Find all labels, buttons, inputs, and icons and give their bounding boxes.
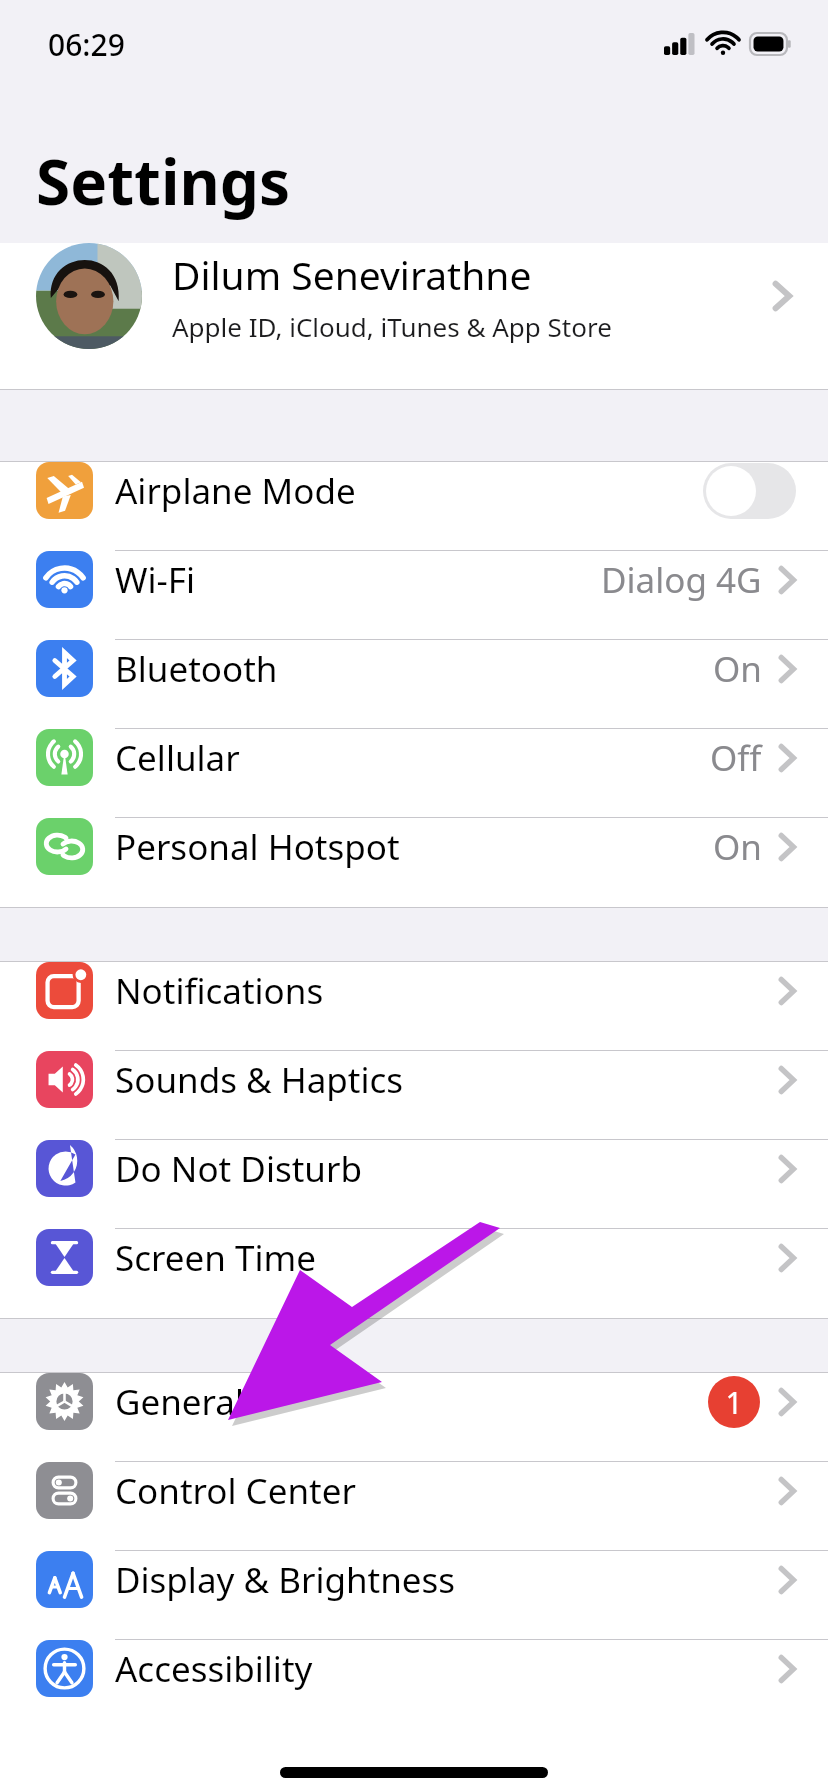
staticText: Off — [710, 734, 762, 782]
staticText: Apple ID, iCloud, iTunes & App Store — [172, 309, 612, 344]
button[interactable]: Cellular — [0, 729, 828, 818]
staticText: 06:29 — [48, 24, 125, 65]
button[interactable]: Screen Time — [0, 1229, 828, 1318]
staticText: Dilum Senevirathne — [172, 248, 532, 301]
staticText: Airplane Mode — [115, 467, 703, 515]
staticText: Cellular — [115, 734, 710, 782]
staticText: 1 — [725, 1382, 743, 1423]
staticText: Control Center — [115, 1467, 778, 1515]
staticText: On — [713, 823, 762, 871]
button[interactable]: Dilum Senevirathne — [0, 243, 828, 389]
button[interactable]: Display & Brightness — [0, 1551, 828, 1640]
staticText: On — [713, 645, 762, 693]
staticText: Accessibility — [115, 1645, 778, 1693]
button[interactable]: Notifications — [0, 962, 828, 1051]
button[interactable]: Control Center — [0, 1462, 828, 1551]
staticText: Do Not Disturb — [115, 1145, 778, 1193]
button[interactable]: Wi-Fi — [0, 551, 828, 640]
staticText: General — [115, 1378, 708, 1426]
button[interactable]: Accessibility — [0, 1640, 828, 1729]
staticText: Notifications — [115, 967, 778, 1015]
button[interactable]: Airplane Mode — [0, 462, 828, 551]
button[interactable]: General — [0, 1373, 828, 1462]
staticText: Settings — [36, 139, 291, 223]
staticText: Dialog 4G — [601, 556, 762, 604]
staticText: Bluetooth — [115, 645, 713, 693]
staticText: Display & Brightness — [115, 1556, 778, 1604]
button[interactable]: Personal Hotspot — [0, 818, 828, 907]
button[interactable]: Sounds & Haptics — [0, 1051, 828, 1140]
staticText: Personal Hotspot — [115, 823, 713, 871]
staticText: Screen Time — [115, 1234, 778, 1282]
staticText: Sounds & Haptics — [115, 1056, 778, 1104]
button[interactable]: Bluetooth — [0, 640, 828, 729]
button[interactable]: Do Not Disturb — [0, 1140, 828, 1229]
staticText: Wi-Fi — [115, 556, 601, 604]
button[interactable]: Airplane Mode toggle — [703, 463, 796, 519]
